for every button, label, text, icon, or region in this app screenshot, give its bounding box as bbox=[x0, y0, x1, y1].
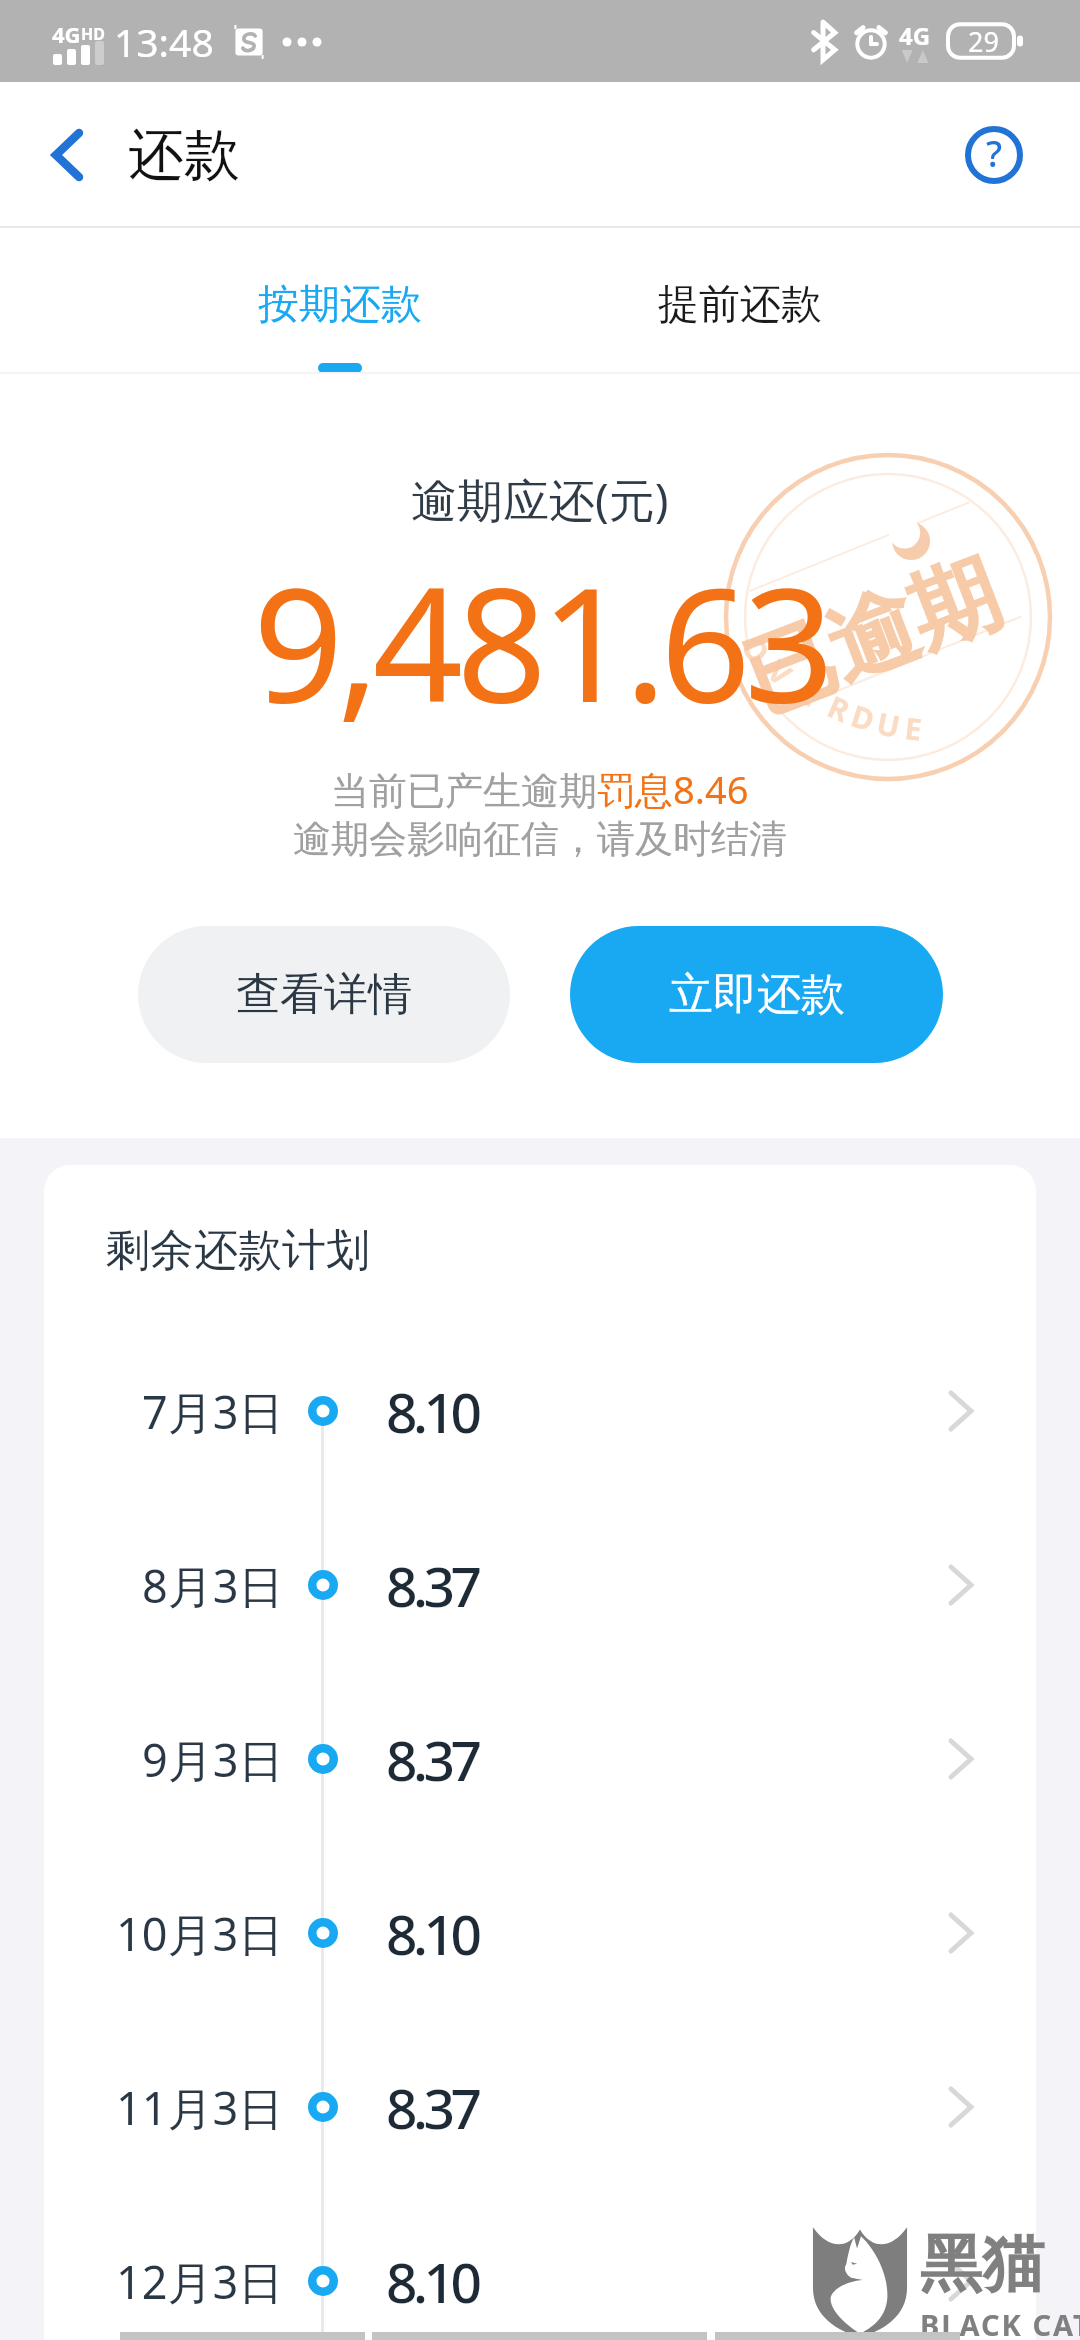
staticText: U bbox=[873, 702, 904, 747]
button[interactable]: 查看详情 bbox=[138, 926, 510, 1063]
staticText: 立即还款 bbox=[669, 967, 845, 1022]
staticText: 逾期会影响征信，请及时结清 bbox=[293, 815, 787, 863]
staticText: 8.37 bbox=[386, 2070, 478, 2145]
staticText: 10月3日 bbox=[116, 1903, 284, 1964]
staticText: E bbox=[792, 672, 827, 715]
staticText: 29 bbox=[968, 23, 999, 60]
staticText: 12月3日 bbox=[116, 2251, 284, 2312]
button[interactable]: 7月3日 bbox=[44, 1324, 1036, 1498]
button[interactable]: 9月3日 bbox=[44, 1672, 1036, 1846]
staticText: 8.37 bbox=[386, 1548, 478, 1623]
staticText: 黑猫 bbox=[920, 2225, 1044, 2303]
staticText: E bbox=[903, 707, 924, 750]
staticText: 按期还款 bbox=[258, 279, 422, 331]
staticText: 8.37 bbox=[386, 1722, 478, 1797]
button[interactable]: 12月3日 bbox=[44, 2194, 1036, 2340]
staticText: 7月3日 bbox=[142, 1381, 284, 1442]
staticText: V bbox=[759, 650, 801, 695]
button[interactable]: 立即还款 bbox=[570, 926, 943, 1063]
staticText: 8.10 bbox=[386, 1374, 478, 1449]
staticText: 逾期应还(元) bbox=[411, 468, 669, 531]
staticText: 查看详情 bbox=[236, 967, 412, 1022]
staticText: 11月3日 bbox=[116, 2077, 284, 2138]
button[interactable]: 11月3日 bbox=[44, 2020, 1036, 2194]
button[interactable]: Back bbox=[20, 105, 120, 205]
button[interactable]: 8月3日 bbox=[44, 1498, 1036, 1672]
staticText: 9月3日 bbox=[142, 1729, 284, 1790]
staticText: 已逾期 bbox=[729, 537, 1015, 736]
staticText: 13:48 bbox=[114, 15, 214, 68]
button[interactable]: 提前还款 bbox=[540, 228, 940, 380]
staticText: 4G bbox=[899, 19, 931, 52]
button[interactable]: Help bbox=[954, 115, 1034, 195]
staticText: 4G bbox=[52, 19, 81, 49]
staticText: 剩余还款计划 bbox=[106, 1223, 370, 1278]
staticText: 还款 bbox=[128, 120, 240, 191]
staticText: R bbox=[822, 686, 856, 731]
staticText: 当前已产生逾期罚息8.46 bbox=[331, 763, 749, 815]
staticText: ? bbox=[986, 129, 1003, 178]
staticText: 9,481.63 bbox=[253, 533, 828, 748]
button[interactable]: 按期还款 bbox=[140, 228, 540, 380]
staticText: O bbox=[733, 627, 779, 672]
staticText: D bbox=[846, 695, 880, 740]
button[interactable]: 10月3日 bbox=[44, 1846, 1036, 2020]
staticText: 8.10 bbox=[386, 1896, 478, 1971]
staticText: 提前还款 bbox=[658, 279, 822, 331]
staticText: HD bbox=[81, 23, 105, 45]
staticText: BLACK CAT bbox=[920, 2305, 1080, 2340]
staticText: 8月3日 bbox=[142, 1555, 284, 1616]
staticText: 8.10 bbox=[386, 2244, 478, 2319]
